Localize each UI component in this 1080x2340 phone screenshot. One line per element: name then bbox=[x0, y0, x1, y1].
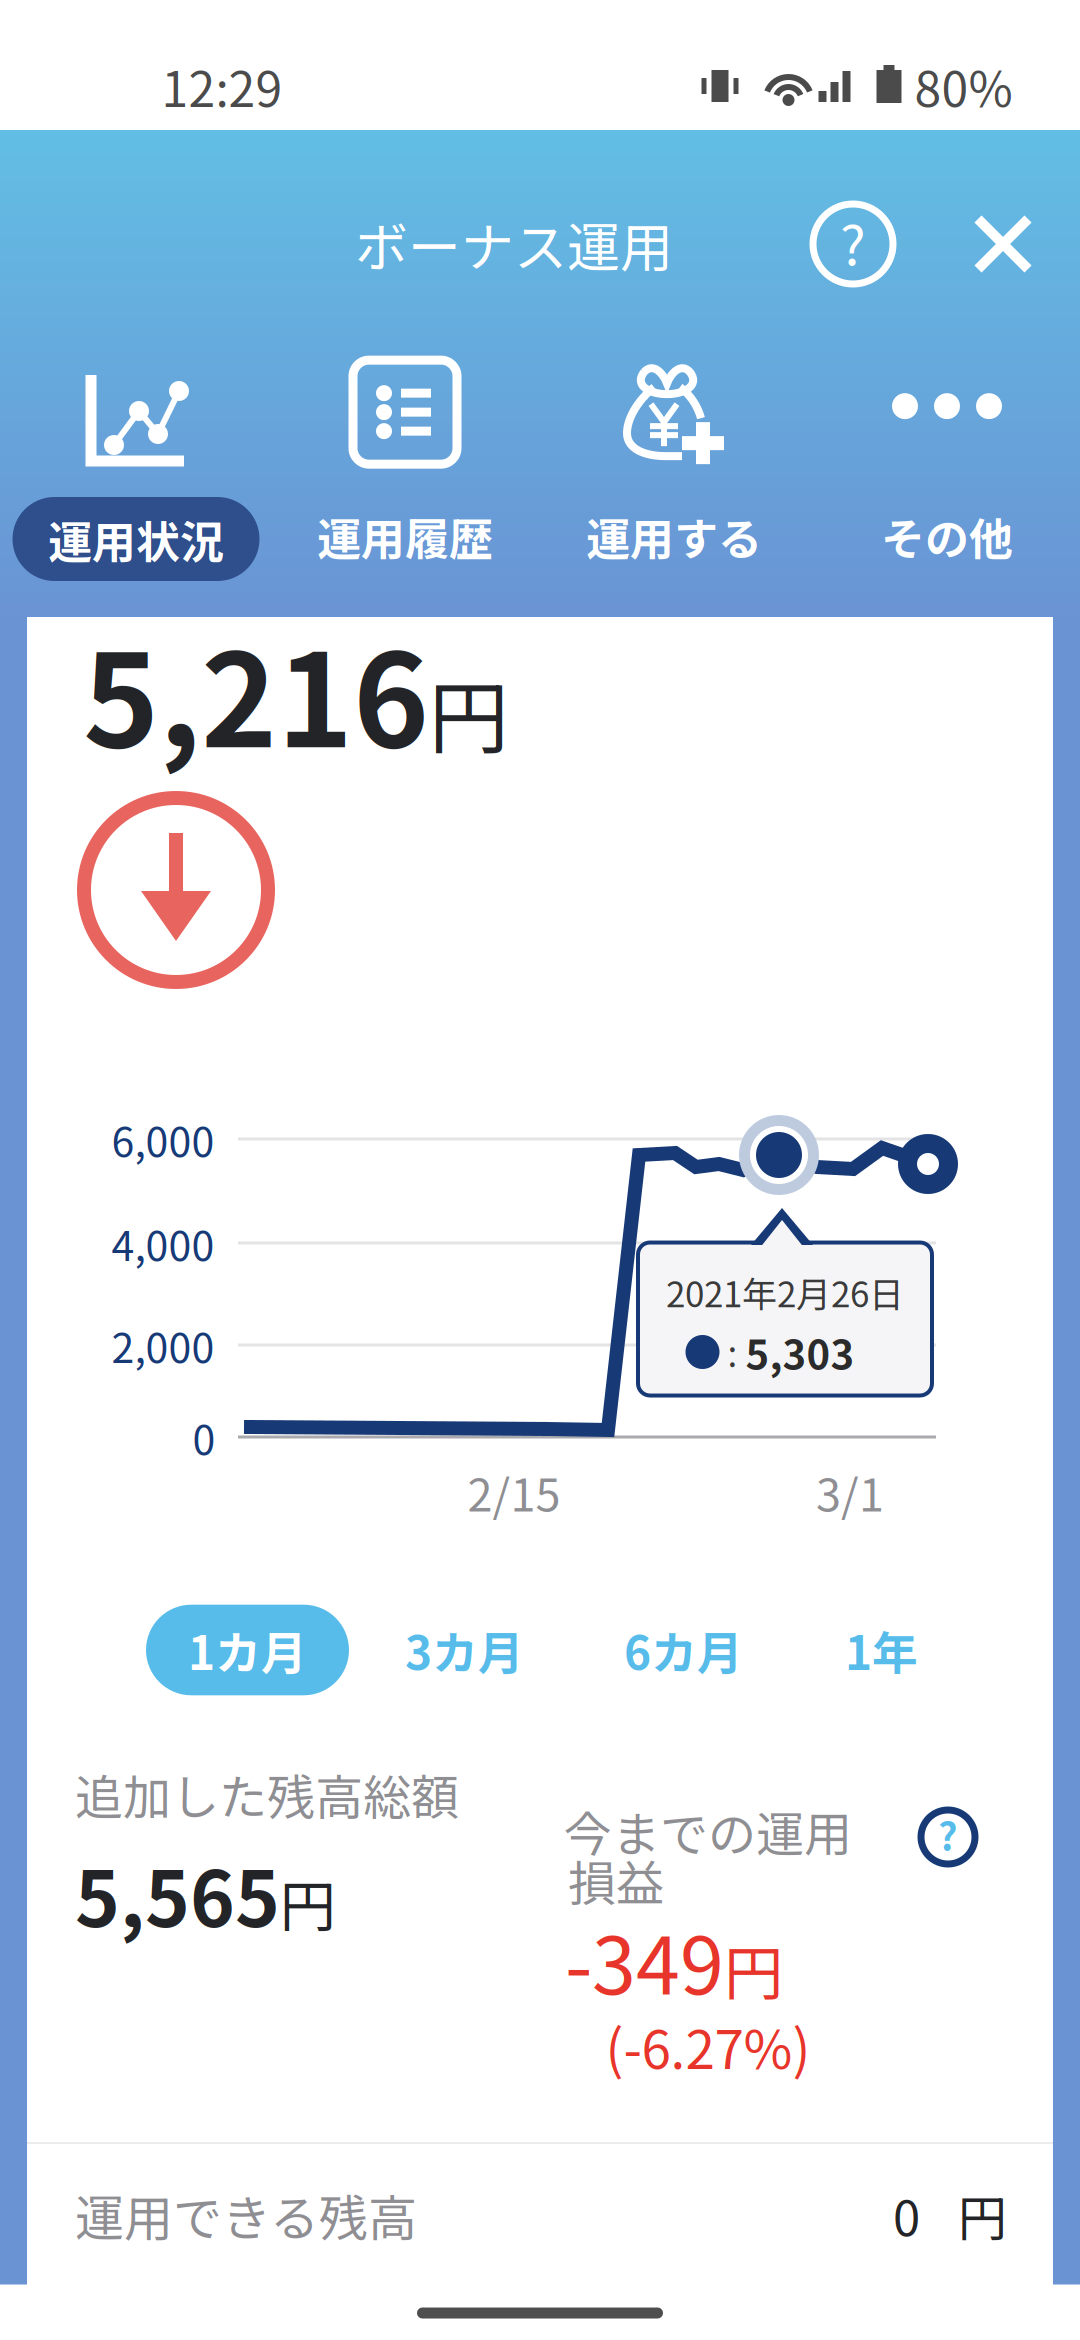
staticText: 運用する bbox=[586, 504, 762, 568]
staticText: 5,216 bbox=[83, 598, 429, 784]
staticText: 5,565 bbox=[75, 1839, 280, 1949]
button[interactable]: 運用する bbox=[586, 359, 762, 583]
staticText: -349 bbox=[565, 1903, 724, 2017]
staticText: 0 bbox=[893, 2179, 920, 2250]
staticText: 12:29 bbox=[161, 51, 282, 121]
staticText: 運用履歴 bbox=[317, 504, 493, 568]
button[interactable]: 運用できる残高 bbox=[27, 2144, 1053, 2286]
staticText: 1カ月 bbox=[188, 1617, 307, 1683]
staticText: 円 bbox=[429, 654, 509, 770]
staticText: 円 bbox=[958, 2179, 1007, 2250]
staticText: : bbox=[719, 1327, 745, 1377]
button[interactable]: Help bbox=[795, 186, 911, 302]
staticText: 5,303 bbox=[745, 1323, 854, 1381]
staticText: 3カ月 bbox=[405, 1617, 524, 1683]
staticText: 6,000 bbox=[111, 1109, 214, 1169]
staticText: 80% bbox=[914, 51, 1012, 121]
staticText: 損益 bbox=[568, 1845, 664, 1915]
staticText: 2/15 bbox=[467, 1459, 560, 1525]
staticText: 2021年2月26日 bbox=[666, 1267, 904, 1317]
staticText: 運用状況 bbox=[48, 507, 224, 571]
staticText: 運用できる残高 bbox=[75, 2179, 417, 2250]
staticText: (-6.27%) bbox=[605, 2008, 810, 2084]
staticText: 今までの運用 bbox=[564, 1796, 852, 1866]
staticText: その他 bbox=[881, 504, 1013, 568]
staticText: ? bbox=[938, 1806, 958, 1861]
button[interactable]: 運用履歴 bbox=[317, 359, 493, 583]
staticText: 6カ月 bbox=[624, 1617, 743, 1683]
button[interactable]: 運用状況 bbox=[12, 373, 259, 581]
staticText: 追加した残高総額 bbox=[75, 1759, 459, 1829]
button[interactable]: 1カ月 bbox=[146, 1605, 349, 1695]
button[interactable]: 3カ月 bbox=[383, 1605, 546, 1695]
staticText: 円 bbox=[724, 1926, 783, 2011]
button[interactable]: 1年 bbox=[823, 1605, 940, 1695]
staticText: 0 bbox=[192, 1407, 215, 1467]
staticText: 2,000 bbox=[111, 1315, 214, 1375]
staticText: 3/1 bbox=[816, 1459, 884, 1525]
staticText: 1年 bbox=[845, 1617, 918, 1683]
staticText: 4,000 bbox=[111, 1213, 214, 1273]
button[interactable]: 6カ月 bbox=[602, 1605, 765, 1695]
staticText: ボーナス運用 bbox=[355, 206, 673, 282]
staticText: 円 bbox=[280, 1862, 336, 1943]
staticText: ? bbox=[840, 203, 866, 281]
button[interactable]: その他 bbox=[881, 393, 1013, 583]
button[interactable]: About investment gains bbox=[903, 1792, 993, 1882]
button[interactable]: Close bbox=[951, 192, 1055, 296]
